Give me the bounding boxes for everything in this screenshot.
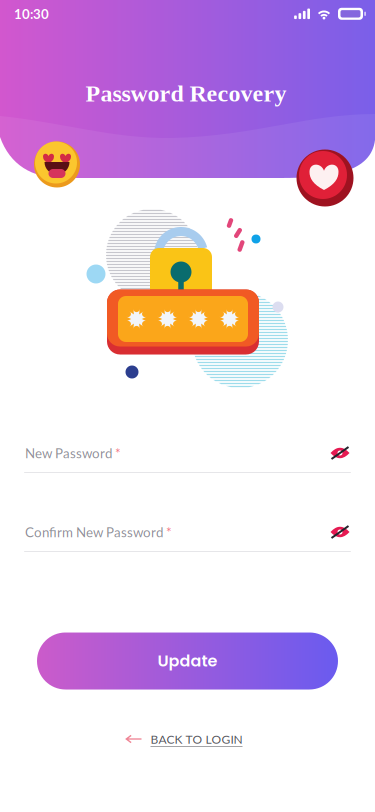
staticText: Confirm New Password (25, 524, 163, 540)
staticText: * (163, 524, 172, 540)
staticText: BACK TO LOGIN (150, 732, 242, 746)
staticText: Update (157, 650, 217, 672)
staticText: 10:30 (14, 6, 49, 22)
button[interactable]: Update (37, 632, 338, 689)
button[interactable]: BACK TO LOGIN (126, 728, 246, 750)
staticText: Password Recovery (85, 80, 286, 107)
button[interactable]: Show password (330, 445, 350, 460)
staticText: New Password (25, 445, 112, 461)
button[interactable]: Show password (330, 524, 350, 539)
staticText: * (112, 445, 121, 461)
